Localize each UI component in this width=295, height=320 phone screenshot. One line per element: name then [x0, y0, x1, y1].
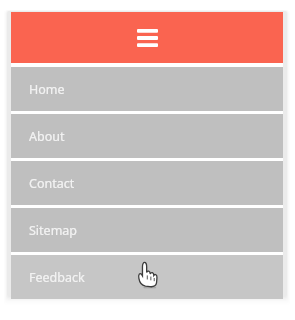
staticText: Sitemap	[29, 222, 78, 239]
staticText: Home	[29, 81, 65, 98]
button[interactable]: About	[11, 114, 283, 158]
button[interactable]: Sitemap	[11, 208, 283, 252]
button[interactable]: Feedback	[11, 255, 283, 299]
button[interactable]: Contact	[11, 161, 283, 205]
button[interactable]: Home	[11, 67, 283, 111]
staticText: Feedback	[29, 269, 85, 286]
staticText: Contact	[29, 175, 75, 192]
staticText: About	[29, 128, 65, 145]
button[interactable]: Open navigation menu	[11, 12, 283, 63]
